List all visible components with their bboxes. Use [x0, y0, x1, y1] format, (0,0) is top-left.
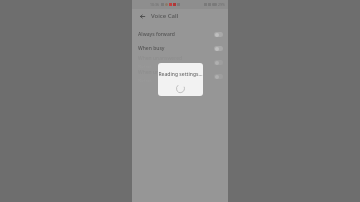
staticText: 10:36 — [150, 2, 159, 7]
staticText: Voice Call — [151, 12, 179, 20]
button[interactable]: Back — [138, 12, 147, 21]
staticText: When busy — [138, 45, 165, 52]
staticText: When unreachable — [138, 69, 183, 76]
button: When unreachable — [132, 69, 228, 83]
button[interactable]: When busy — [132, 41, 228, 55]
button: When unanswered — [132, 55, 228, 69]
button[interactable]: Always forward — [132, 27, 228, 41]
button[interactable]: Reading settings… — [158, 63, 203, 96]
staticText: Reading settings… — [158, 71, 203, 78]
staticText: Always forward — [138, 31, 175, 38]
staticText: 29% — [218, 2, 225, 7]
